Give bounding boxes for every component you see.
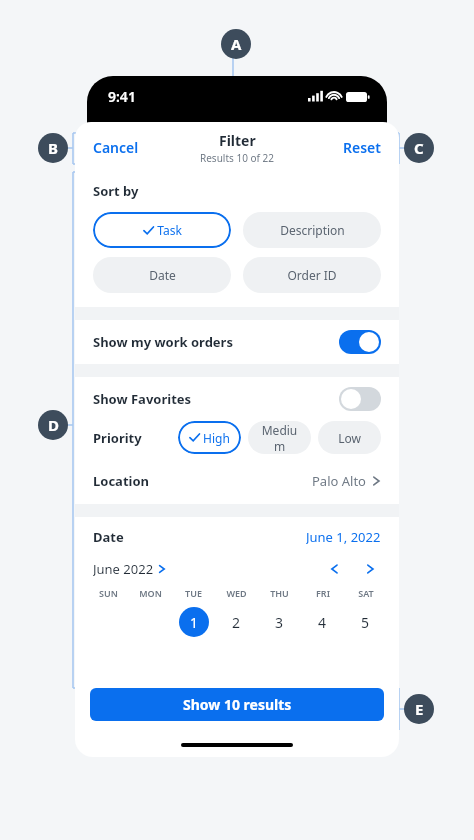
button[interactable]: Reset xyxy=(331,132,393,163)
staticText: Sort by xyxy=(93,182,139,200)
button[interactable]: 1 xyxy=(172,606,215,638)
button[interactable]: Location xyxy=(75,464,399,498)
staticText: SAT xyxy=(358,587,374,599)
button[interactable]: Task xyxy=(93,212,231,248)
button[interactable]: Description xyxy=(243,212,381,248)
staticText: Filter xyxy=(219,131,256,150)
button[interactable]: Toggle on xyxy=(339,330,381,354)
button[interactable]: Order ID xyxy=(243,257,381,293)
staticText: Date xyxy=(93,528,124,546)
button[interactable]: Show my work orders xyxy=(75,320,399,364)
staticText: FRI xyxy=(316,587,330,599)
staticText: Palo Alto xyxy=(312,472,366,490)
staticText: Show Favorites xyxy=(93,390,192,408)
staticText: Show my work orders xyxy=(93,333,233,351)
staticText: C xyxy=(414,138,424,158)
staticText: THU xyxy=(270,587,289,599)
staticText: 9:41 xyxy=(108,87,136,106)
staticText: High xyxy=(203,430,230,446)
staticText: 1 xyxy=(190,613,199,632)
staticText: Order ID xyxy=(287,267,337,283)
staticText: WED xyxy=(226,587,247,599)
staticText: Task xyxy=(157,222,182,238)
staticText: SUN xyxy=(99,587,118,599)
staticText: June 1, 2022 xyxy=(306,528,381,546)
button[interactable]: June 1, 2022 xyxy=(306,528,381,546)
staticText: June 2022 xyxy=(93,560,154,578)
staticText: Location xyxy=(93,472,149,490)
button[interactable]: Next month xyxy=(359,558,381,580)
staticText: MON xyxy=(139,587,162,599)
button[interactable]: Medium xyxy=(248,421,311,454)
staticText: 2 xyxy=(232,613,241,632)
button[interactable]: 5 xyxy=(344,606,387,638)
button[interactable]: June 2022 xyxy=(93,560,166,578)
button[interactable]: Show Favorites xyxy=(75,377,399,421)
staticText: Show 10 results xyxy=(183,695,292,714)
staticText: Medium xyxy=(258,422,301,454)
staticText: 4 xyxy=(318,613,327,632)
button[interactable]: High xyxy=(178,421,241,454)
staticText: Results 10 of 22 xyxy=(200,151,274,165)
staticText: B xyxy=(48,138,58,158)
button[interactable]: 4 xyxy=(301,606,344,638)
button[interactable]: 3 xyxy=(258,606,301,638)
staticText: D xyxy=(48,415,59,435)
staticText: Low xyxy=(338,430,361,446)
button[interactable]: Low xyxy=(318,421,381,454)
staticText: Cancel xyxy=(93,138,139,157)
staticText: TUE xyxy=(185,587,202,599)
staticText: 5 xyxy=(361,613,370,632)
staticText: Date xyxy=(149,267,176,283)
staticText: A xyxy=(231,34,242,54)
button[interactable]: Cancel xyxy=(81,132,151,163)
staticText: E xyxy=(415,699,424,719)
button[interactable]: Date xyxy=(93,257,231,293)
button[interactable]: 2 xyxy=(215,606,258,638)
button[interactable]: Toggle off xyxy=(339,387,381,411)
button[interactable]: Show 10 results xyxy=(90,688,384,721)
staticText: Priority xyxy=(93,429,142,447)
button[interactable]: Previous month xyxy=(323,558,345,580)
staticText: 3 xyxy=(275,613,284,632)
staticText: Reset xyxy=(343,138,381,157)
staticText: Description xyxy=(280,222,345,238)
